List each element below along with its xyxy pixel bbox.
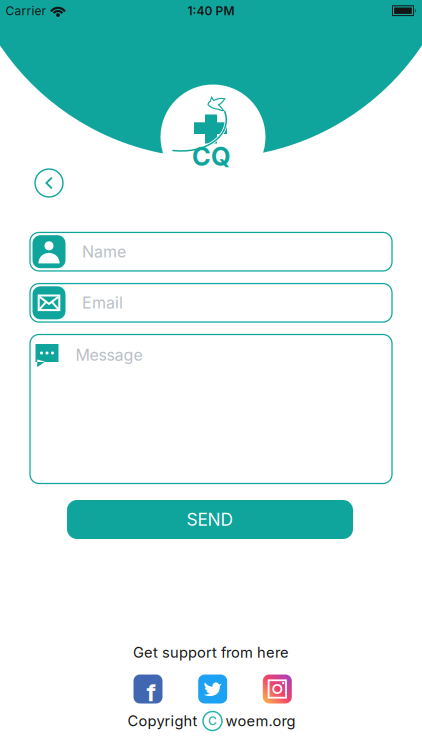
staticText: Get support from here (133, 644, 289, 661)
staticText: Copyright (127, 712, 197, 730)
button[interactable]: Facebook (133, 674, 162, 703)
staticText: Name (82, 242, 126, 261)
button[interactable]: Instagram (263, 674, 292, 703)
staticText: C (208, 714, 217, 728)
staticText: woem.org (225, 712, 295, 730)
button[interactable]: Name (30, 232, 392, 271)
staticText: Message (75, 346, 142, 364)
staticText: Email (82, 293, 123, 312)
staticText: Carrier (5, 4, 46, 18)
staticText: f (146, 678, 155, 707)
button[interactable]: Back (35, 169, 63, 197)
staticText: CQ (192, 142, 230, 171)
staticText: 1:40 PM (187, 4, 234, 18)
button[interactable]: SEND (67, 500, 353, 539)
button[interactable]: Message (30, 334, 392, 483)
staticText: SEND (186, 509, 233, 530)
button[interactable]: woem.org (225, 712, 295, 730)
button[interactable]: Twitter (198, 674, 227, 703)
button[interactable]: Email (30, 284, 392, 322)
